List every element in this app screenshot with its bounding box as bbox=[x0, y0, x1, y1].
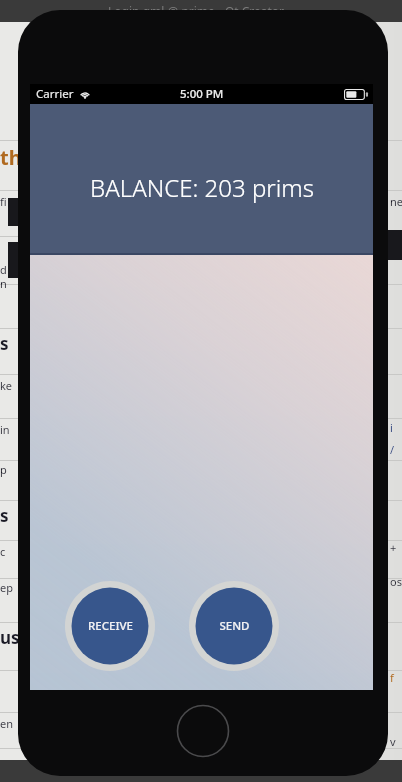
staticText: os bbox=[390, 574, 402, 589]
button[interactable]: SEND bbox=[188, 580, 280, 672]
staticText: Login.qml @ prime - Qt Creator bbox=[108, 3, 285, 19]
staticText: c bbox=[0, 544, 6, 559]
button[interactable]: RECEIVE bbox=[64, 580, 156, 672]
staticText: / bbox=[390, 442, 395, 457]
staticText: f bbox=[390, 670, 394, 685]
staticText: i bbox=[390, 420, 393, 435]
staticText: p bbox=[0, 462, 7, 477]
staticText: op bbox=[0, 758, 14, 773]
staticText: s bbox=[0, 332, 9, 355]
staticText: d bbox=[0, 262, 7, 277]
staticText: BALANCE: 203 prims bbox=[90, 171, 314, 204]
button[interactable]: Home bbox=[176, 704, 230, 758]
staticText: RECEIVE bbox=[88, 618, 133, 634]
staticText: v bbox=[390, 734, 396, 749]
staticText: s bbox=[0, 504, 9, 527]
staticText: fi bbox=[0, 194, 7, 209]
staticText: th bbox=[0, 144, 22, 171]
staticText: en bbox=[0, 716, 14, 731]
staticText: Carrier bbox=[36, 86, 74, 102]
staticText: 5:00 PM bbox=[180, 86, 224, 102]
staticText: + bbox=[390, 540, 397, 555]
staticText: SEND bbox=[219, 618, 250, 634]
staticText: us bbox=[0, 626, 20, 649]
staticText: ne bbox=[390, 194, 402, 209]
staticText: in bbox=[0, 422, 10, 437]
staticText: n bbox=[0, 276, 7, 291]
staticText: ke bbox=[0, 378, 13, 393]
staticText: ep bbox=[0, 580, 13, 595]
